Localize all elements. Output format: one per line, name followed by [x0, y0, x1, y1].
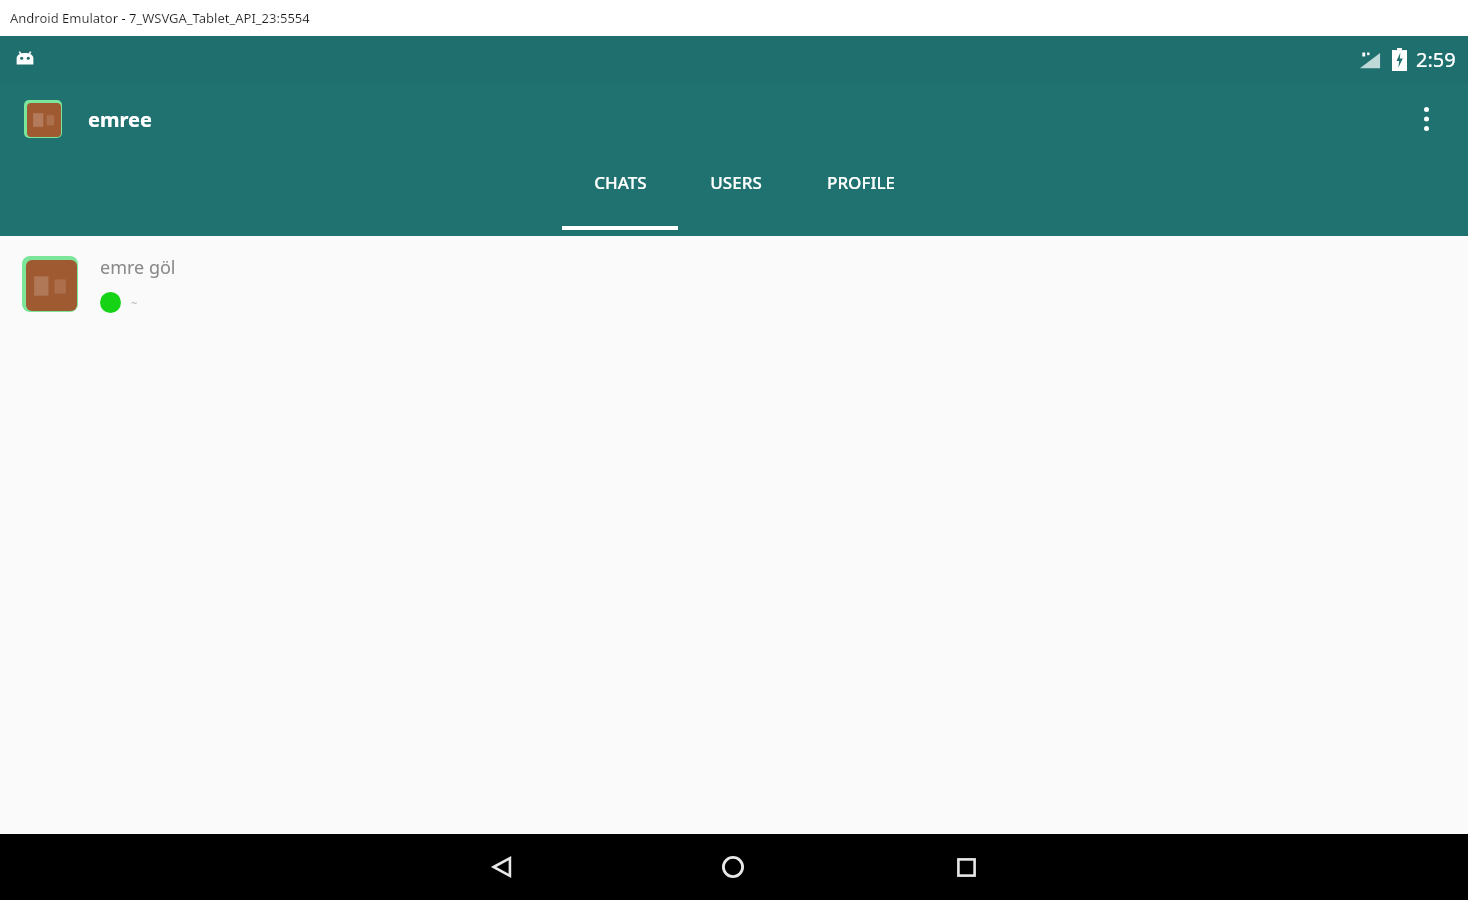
button[interactable]: CHATS — [562, 155, 678, 236]
button[interactable]: emre göl — [0, 236, 1468, 332]
button[interactable]: More options — [1402, 95, 1450, 143]
button[interactable]: Recent apps — [942, 834, 990, 900]
button[interactable]: Back — [478, 834, 526, 900]
button[interactable]: Home — [709, 834, 757, 900]
staticText: emre göl — [100, 255, 176, 280]
staticText: ~ — [131, 295, 138, 310]
staticText: USERS — [710, 171, 762, 194]
button[interactable]: PROFILE — [794, 155, 928, 236]
staticText: PROFILE — [827, 171, 895, 194]
button[interactable]: USERS — [678, 155, 794, 236]
staticText: emree — [88, 106, 152, 133]
staticText: 2:59 — [1416, 46, 1456, 73]
staticText: Android Emulator - 7_WSVGA_Tablet_API_23… — [10, 9, 310, 27]
staticText: CHATS — [594, 171, 647, 194]
button[interactable]: Profile photo — [24, 100, 62, 138]
